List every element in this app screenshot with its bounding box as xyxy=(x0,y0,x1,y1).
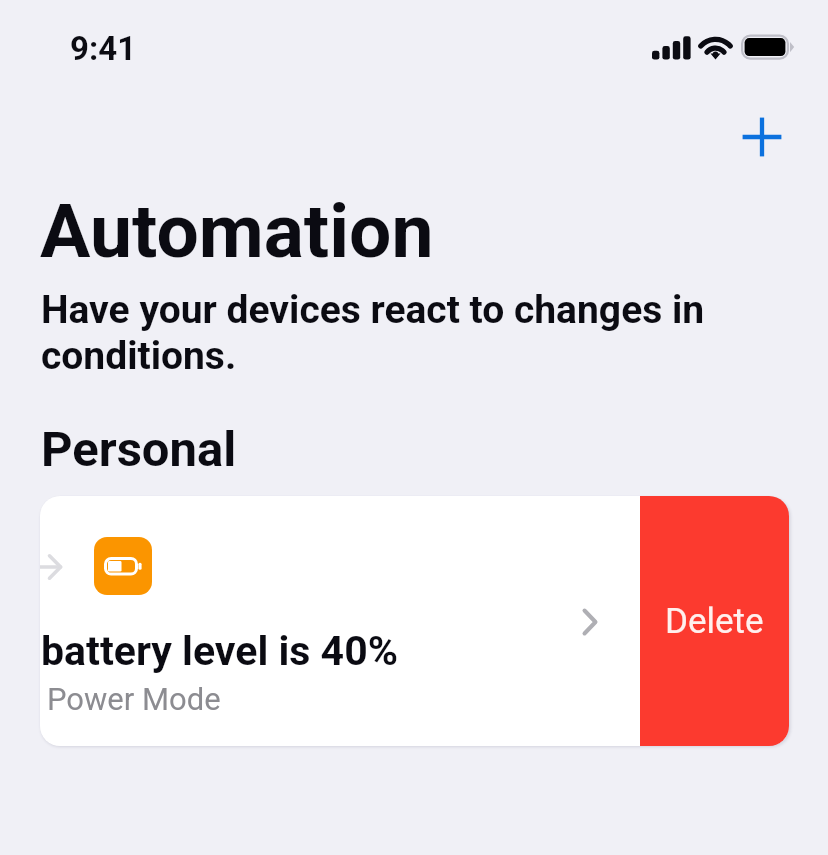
staticText: 9:41 xyxy=(70,29,137,68)
button[interactable]: Add automation xyxy=(718,93,805,180)
staticText: Have your devices react to changes in co… xyxy=(41,287,741,379)
button[interactable]: Delete xyxy=(640,496,789,746)
button[interactable]: battery level is 40% xyxy=(40,496,640,746)
staticText: battery level is 40% xyxy=(41,627,398,675)
staticText: Delete xyxy=(665,601,764,642)
staticText: Power Mode xyxy=(47,681,221,717)
staticText: Personal xyxy=(41,421,237,478)
staticText: Automation xyxy=(40,187,434,275)
